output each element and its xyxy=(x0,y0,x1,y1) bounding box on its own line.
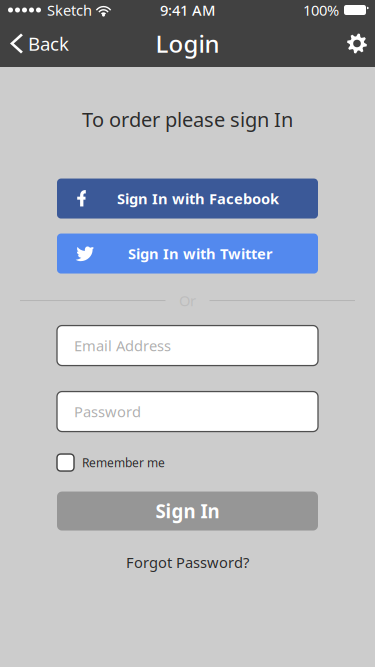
button[interactable]: Settings xyxy=(333,20,375,66)
button[interactable]: Sign In with Twitter xyxy=(57,234,318,274)
staticText: Password xyxy=(74,402,141,421)
staticText: To order please sign In xyxy=(82,106,293,133)
staticText: Remember me xyxy=(82,455,165,470)
button[interactable]: Forgot Password? xyxy=(112,548,263,577)
staticText: 100% xyxy=(303,0,339,20)
button[interactable]: Remember me xyxy=(57,451,318,475)
staticText: Forgot Password? xyxy=(126,553,249,572)
staticText: Sketch xyxy=(47,0,92,20)
staticText: Sign In with Twitter xyxy=(128,244,273,263)
button[interactable]: Sign In xyxy=(57,492,318,531)
staticText: Sign In xyxy=(155,499,219,523)
button[interactable]: Sign In with Facebook xyxy=(57,179,318,219)
button[interactable]: Back xyxy=(0,20,81,66)
staticText: Sign In with Facebook xyxy=(117,189,279,208)
staticText: Back xyxy=(28,31,69,56)
staticText: Email Address xyxy=(74,336,171,355)
staticText: Login xyxy=(155,28,219,59)
staticText: Or xyxy=(179,291,196,310)
staticText: 9:41 AM xyxy=(160,0,215,20)
